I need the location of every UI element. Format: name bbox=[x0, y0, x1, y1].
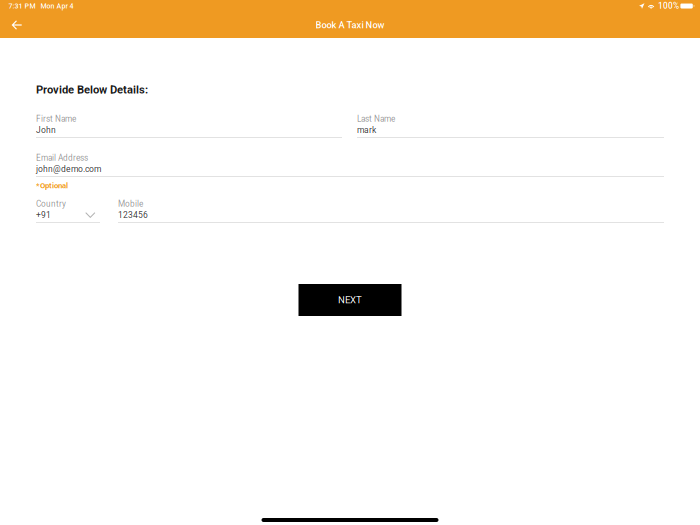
staticText: Email Address bbox=[36, 153, 88, 163]
button[interactable]: Back bbox=[4, 12, 30, 38]
staticText: *Optional bbox=[36, 181, 68, 190]
staticText: Mobile bbox=[118, 199, 143, 209]
button[interactable]: Country bbox=[36, 199, 100, 223]
button[interactable]: Last Name bbox=[357, 114, 664, 138]
staticText: First Name bbox=[36, 114, 76, 124]
staticText: Mon Apr 4 bbox=[40, 2, 73, 10]
staticText: 123456 bbox=[118, 210, 148, 220]
staticText: Country bbox=[36, 199, 66, 209]
staticText: mark bbox=[357, 125, 376, 135]
staticText: Provide Below Details: bbox=[36, 83, 148, 96]
staticText: NEXT bbox=[338, 294, 362, 306]
staticText: Book A Taxi Now bbox=[315, 19, 384, 30]
button[interactable]: Email Address bbox=[36, 153, 664, 177]
staticText: 7:31 PM bbox=[8, 2, 35, 10]
staticText: 100% bbox=[658, 1, 679, 11]
button[interactable]: First Name bbox=[36, 114, 342, 138]
staticText: Last Name bbox=[357, 114, 395, 124]
button[interactable]: NEXT bbox=[298, 284, 401, 316]
staticText: John bbox=[36, 125, 56, 135]
button[interactable]: Mobile bbox=[118, 199, 664, 223]
staticText: +91 bbox=[36, 210, 51, 220]
staticText: john@demo.com bbox=[36, 164, 101, 174]
